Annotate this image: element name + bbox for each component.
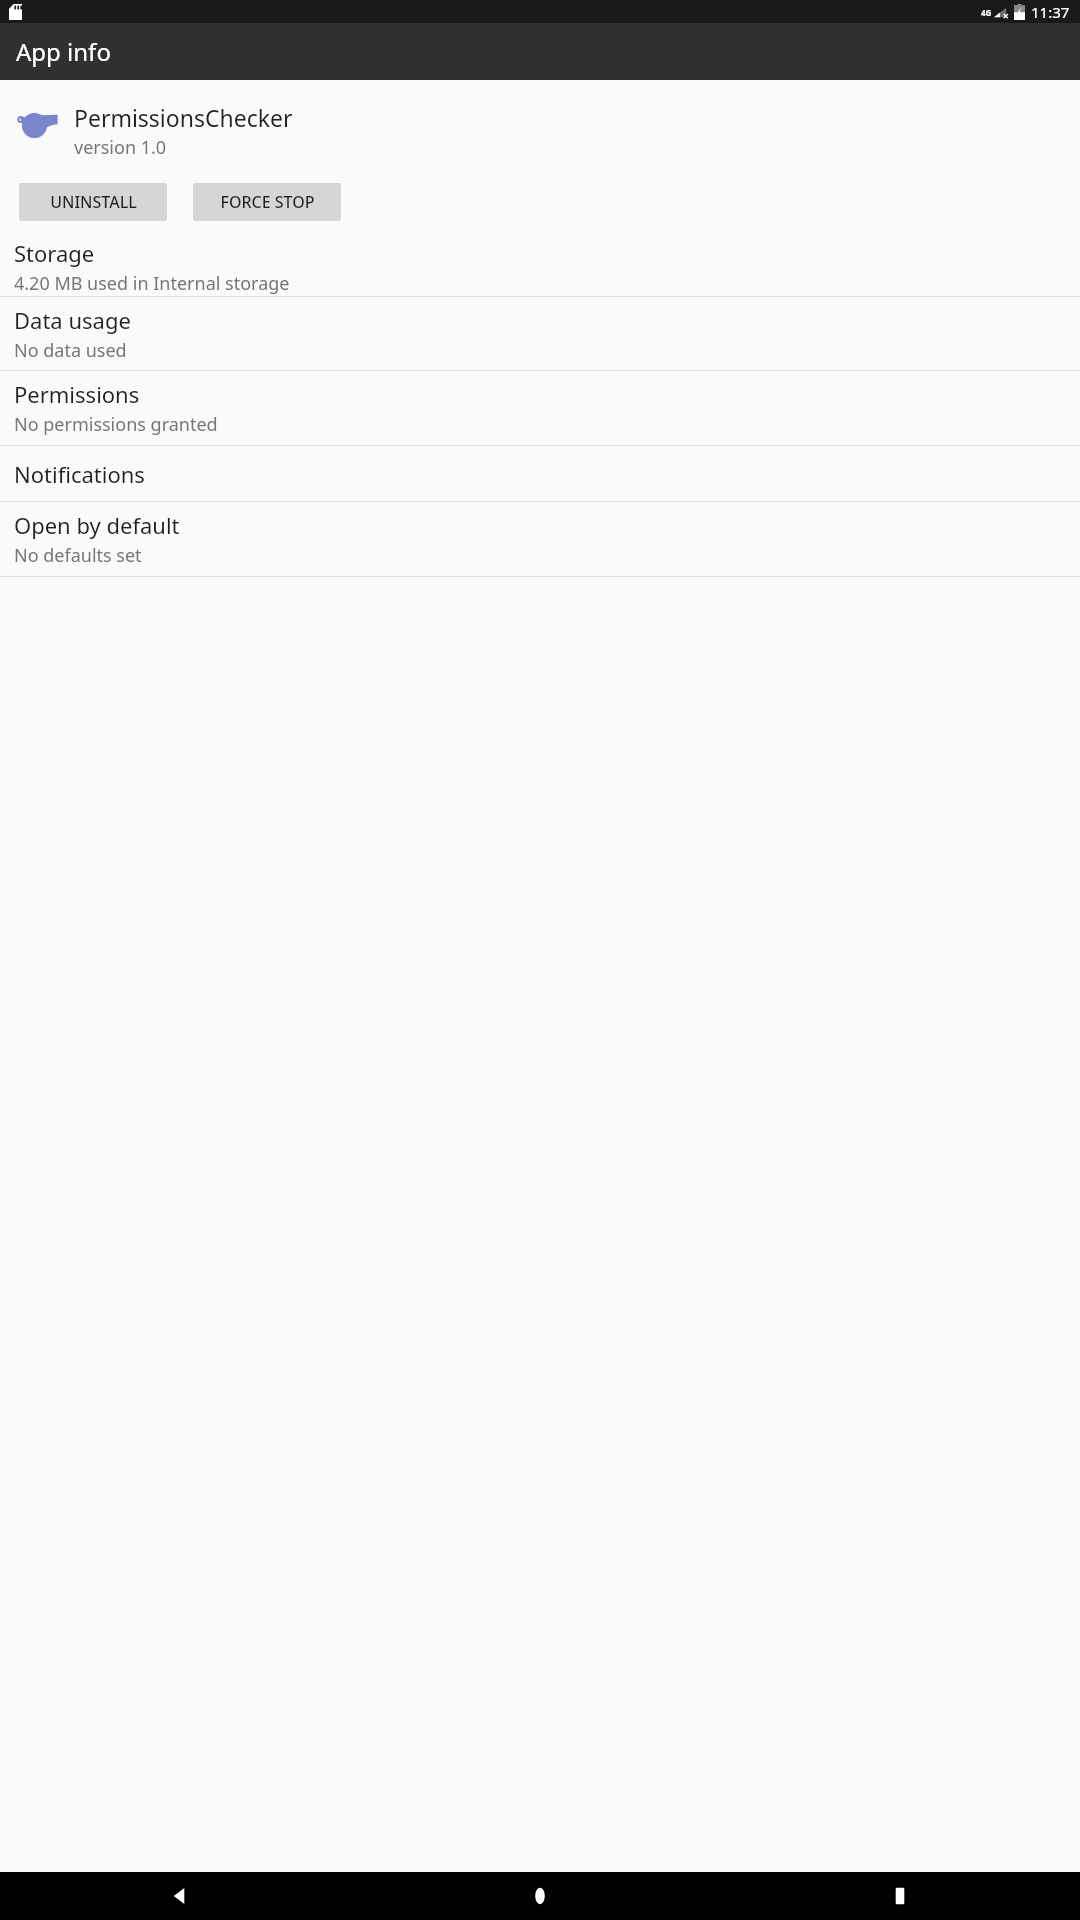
- staticText: 4G: [981, 7, 992, 18]
- button[interactable]: Storage: [0, 237, 1080, 296]
- button[interactable]: Data usage: [0, 297, 1080, 370]
- button[interactable]: Notifications: [0, 446, 1080, 501]
- staticText: 11:37: [1031, 2, 1070, 22]
- staticText: Open by default: [14, 510, 180, 540]
- button[interactable]: FORCE STOP: [193, 183, 341, 221]
- button[interactable]: Open by default: [0, 502, 1080, 576]
- staticText: version 1.0: [74, 135, 167, 160]
- staticText: PermissionsChecker: [74, 102, 293, 133]
- button[interactable]: Recents: [720, 1872, 1080, 1920]
- staticText: No data used: [14, 338, 127, 363]
- staticText: UNINSTALL: [50, 191, 137, 213]
- button[interactable]: UNINSTALL: [19, 183, 167, 221]
- staticText: FORCE STOP: [220, 191, 315, 213]
- button[interactable]: Back: [0, 1872, 360, 1920]
- staticText: 4.20 MB used in Internal storage: [14, 271, 290, 296]
- staticText: No permissions granted: [14, 412, 218, 437]
- staticText: Notifications: [14, 459, 145, 489]
- staticText: Permissions: [14, 379, 140, 409]
- staticText: Data usage: [14, 305, 131, 335]
- staticText: Storage: [14, 238, 95, 268]
- staticText: No defaults set: [14, 543, 142, 568]
- button[interactable]: Home: [360, 1872, 720, 1920]
- staticText: App info: [16, 35, 111, 68]
- button[interactable]: Permissions: [0, 371, 1080, 445]
